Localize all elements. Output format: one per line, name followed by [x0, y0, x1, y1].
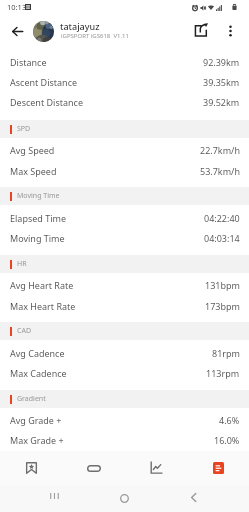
staticText: 04:03:14 — [204, 232, 240, 244]
staticText: 39.35km — [203, 76, 240, 88]
staticText: 131bpm — [205, 279, 240, 291]
staticText: Ascent Distance — [10, 76, 78, 88]
staticText: CAD — [17, 326, 32, 336]
staticText: 04:22:40 — [204, 212, 240, 224]
button[interactable]: More options — [221, 18, 239, 44]
button[interactable]: Back — [5, 18, 29, 45]
staticText: iGPSPORT iGS618 V1.11 — [61, 32, 129, 40]
staticText: Descent Distance — [10, 96, 83, 108]
staticText: 113rpm — [206, 367, 240, 379]
staticText: 39.52km — [203, 96, 240, 108]
button[interactable]: Distance — [0, 52, 249, 72]
button[interactable]: Descent Distance — [0, 92, 249, 112]
button[interactable]: Avg Heart Rate — [0, 275, 249, 295]
button[interactable]: Details — [187, 451, 249, 485]
staticText: Distance — [10, 56, 47, 68]
staticText: Avg Heart Rate — [10, 279, 74, 291]
staticText: Max Cadence — [10, 367, 67, 379]
button[interactable]: Max Speed — [0, 161, 249, 181]
button[interactable]: Avg Grade + — [0, 410, 249, 430]
button[interactable]: Avg Cadence — [0, 343, 249, 363]
staticText: Elapsed Time — [10, 212, 66, 224]
staticText: Gradient — [17, 394, 46, 404]
staticText: Avg Cadence — [10, 347, 65, 359]
button[interactable]: Charts — [125, 451, 187, 485]
staticText: SPD — [17, 124, 31, 134]
staticText: 92.39km — [203, 56, 240, 68]
staticText: HR — [17, 259, 27, 269]
staticText: 173bpm — [205, 300, 240, 312]
button[interactable]: Map — [63, 451, 125, 485]
staticText: 81rpm — [212, 347, 240, 359]
button[interactable]: Max Heart Rate — [0, 296, 249, 316]
staticText: Avg Grade + — [10, 414, 62, 426]
button[interactable]: Ascent Distance — [0, 72, 249, 92]
staticText: 53.7km/h — [200, 165, 240, 177]
button[interactable]: Moving Time — [0, 228, 249, 248]
button[interactable]: Max Cadence — [0, 363, 249, 383]
staticText: tatajayuz — [60, 20, 100, 32]
staticText: Avg Speed — [10, 144, 55, 156]
button[interactable]: Max Grade + — [0, 430, 249, 450]
staticText: 4.6% — [219, 414, 240, 426]
staticText: 16.0% — [214, 434, 240, 446]
button[interactable]: Share — [189, 17, 214, 43]
staticText: 10:13 — [7, 2, 27, 12]
button[interactable]: Avg Speed — [0, 140, 249, 160]
button[interactable]: Saved — [0, 451, 63, 485]
staticText: Max Speed — [10, 165, 57, 177]
staticText: 22.7km/h — [200, 144, 240, 156]
staticText: Max Heart Rate — [10, 300, 76, 312]
button[interactable]: Elapsed Time — [0, 208, 249, 228]
staticText: Moving Time — [10, 232, 65, 244]
staticText: Max Grade + — [10, 434, 64, 446]
staticText: Moving Time — [17, 191, 60, 201]
